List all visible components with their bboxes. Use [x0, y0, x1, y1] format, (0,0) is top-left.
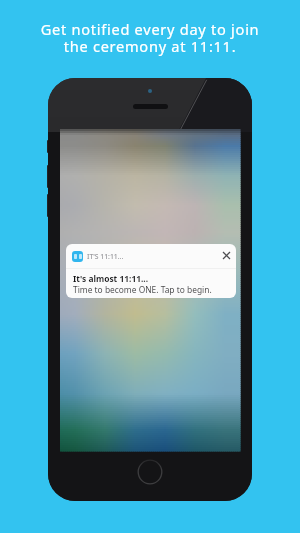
button[interactable]: IT'S 11:11... [66, 244, 236, 298]
staticText: Get notified every day to join the cerem… [0, 19, 300, 56]
staticText: It's almost 11:11... [73, 273, 149, 284]
staticText: IT'S 11:11... [87, 252, 124, 261]
button[interactable]: Dismiss notification [217, 246, 236, 265]
staticText: Time to become ONE. Tap to begin. [73, 284, 212, 295]
